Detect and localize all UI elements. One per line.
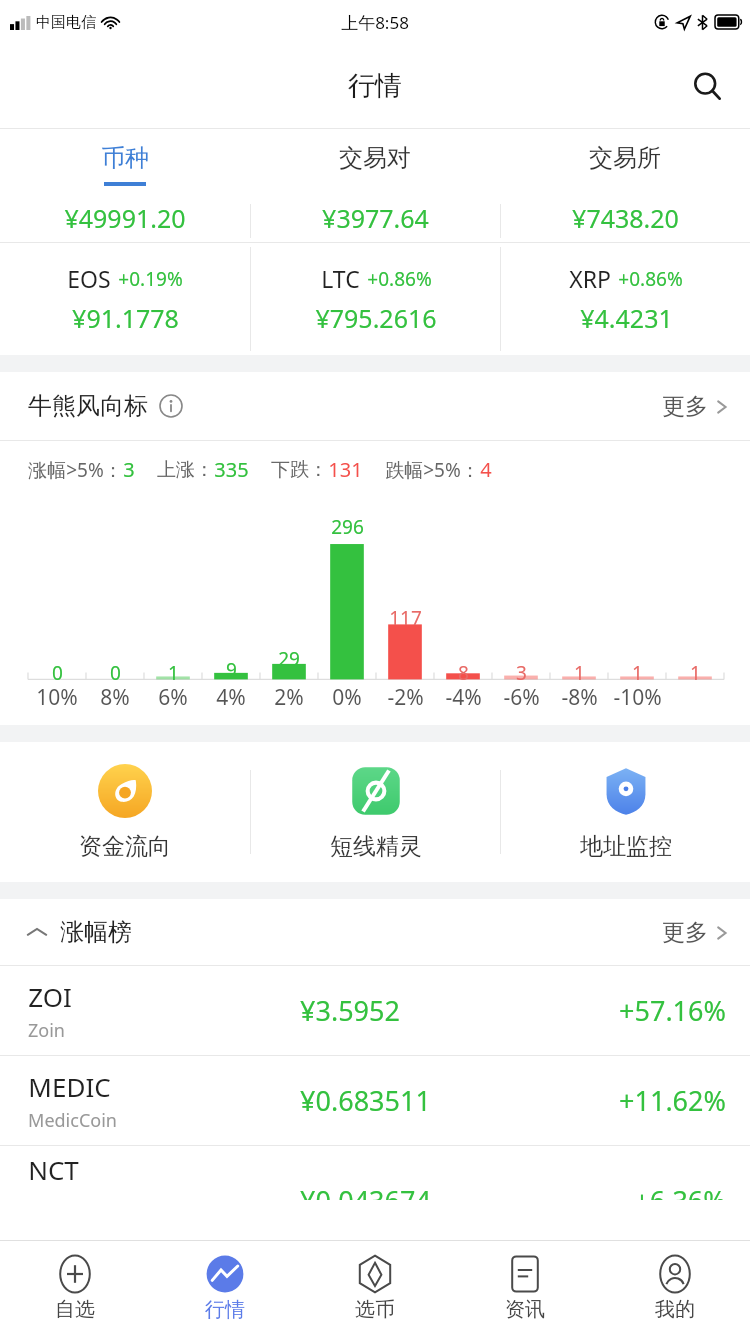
staticText: ¥49991.20 xyxy=(64,201,186,235)
staticText: 更多 xyxy=(662,392,708,421)
button[interactable]: 说明 xyxy=(158,393,184,419)
button[interactable]: 选币 xyxy=(300,1241,450,1334)
staticText: 335 xyxy=(214,456,249,483)
button[interactable]: 币种 xyxy=(0,129,250,200)
staticText: 短线精灵 xyxy=(330,832,422,861)
staticText: 4% xyxy=(216,683,246,712)
staticText: 自选 xyxy=(55,1297,95,1322)
staticText: ¥7438.20 xyxy=(572,201,679,235)
staticText: 上午8:58 xyxy=(341,11,409,34)
button[interactable]: 资金流向 xyxy=(0,742,250,882)
staticText: 4 xyxy=(480,456,492,483)
staticText: 9 xyxy=(226,657,237,683)
staticText: ¥795.2616 xyxy=(315,301,437,335)
staticText: MedicCoin xyxy=(28,1108,117,1133)
staticText: Zoin xyxy=(28,1018,65,1043)
staticText: 交易对 xyxy=(339,143,411,173)
button[interactable]: EOS xyxy=(0,243,250,355)
staticText: 上涨： xyxy=(157,458,214,482)
staticText: 3 xyxy=(123,456,135,483)
staticText: +11.62% xyxy=(619,1082,726,1119)
staticText: 0 xyxy=(52,660,63,686)
button[interactable]: MEDIC xyxy=(0,1056,750,1145)
staticText: 资讯 xyxy=(505,1297,545,1322)
button[interactable]: 涨幅榜 xyxy=(26,917,132,947)
button[interactable]: 行情 xyxy=(150,1241,300,1334)
staticText: 0 xyxy=(110,660,121,686)
staticText: ¥3977.64 xyxy=(322,201,429,235)
staticText: 117 xyxy=(389,605,422,631)
staticText: 行情 xyxy=(348,69,402,103)
button[interactable]: 更多 xyxy=(662,918,728,947)
staticText: -8% xyxy=(561,683,598,712)
staticText: 中国电信 xyxy=(36,13,96,32)
staticText: 涨幅>5%： xyxy=(28,457,123,483)
staticText: EOS xyxy=(67,263,111,294)
staticText: ¥4.4231 xyxy=(580,301,673,335)
staticText: 1 xyxy=(690,660,701,686)
staticText: 选币 xyxy=(355,1297,395,1322)
staticText: ZOI xyxy=(28,979,72,1014)
staticText: +0.86% xyxy=(367,266,432,292)
staticText: NCT xyxy=(28,1152,79,1187)
staticText: 资金流向 xyxy=(79,832,171,861)
staticText: 29 xyxy=(278,646,300,672)
button[interactable]: ZOI xyxy=(0,966,750,1055)
button[interactable]: 自选 xyxy=(0,1241,150,1334)
staticText: 下跌： xyxy=(271,458,328,482)
staticText: -6% xyxy=(503,683,540,712)
button[interactable]: 短线精灵 xyxy=(251,742,500,882)
staticText: MEDIC xyxy=(28,1069,111,1104)
button[interactable]: 更多 xyxy=(662,392,728,421)
button[interactable]: 搜索 xyxy=(684,63,730,109)
staticText: 1 xyxy=(168,660,179,686)
staticText: 296 xyxy=(331,514,364,540)
staticText: ¥0.683511 xyxy=(300,1082,431,1119)
staticText: 1 xyxy=(574,660,585,686)
button[interactable]: XRP xyxy=(501,243,750,355)
button[interactable]: 地址监控 xyxy=(501,742,750,882)
button[interactable]: 交易对 xyxy=(250,129,500,200)
staticText: +6.36% xyxy=(634,1182,726,1200)
staticText: 跌幅>5%： xyxy=(385,457,480,483)
button[interactable]: ¥7438.20 xyxy=(501,200,750,242)
staticText: 地址监控 xyxy=(580,832,672,861)
staticText: 交易所 xyxy=(589,143,661,173)
staticText: 2% xyxy=(274,683,304,712)
staticText: 10% xyxy=(36,683,78,712)
staticText: 涨幅榜 xyxy=(60,917,132,947)
button[interactable]: ¥49991.20 xyxy=(0,200,250,242)
staticText: 牛熊风向标 xyxy=(28,391,148,421)
staticText: -4% xyxy=(445,683,482,712)
button[interactable]: 资讯 xyxy=(450,1241,600,1334)
staticText: 我的 xyxy=(655,1297,695,1322)
staticText: +0.19% xyxy=(118,266,183,292)
staticText: 币种 xyxy=(101,143,149,173)
button[interactable]: LTC xyxy=(251,243,500,355)
staticText: +0.86% xyxy=(618,266,683,292)
staticText: ¥0.043674 xyxy=(300,1182,431,1200)
button[interactable]: ¥3977.64 xyxy=(251,200,500,242)
button[interactable]: NCT xyxy=(0,1146,750,1200)
button[interactable]: 交易所 xyxy=(500,129,750,200)
staticText: 行情 xyxy=(205,1297,245,1322)
staticText: 更多 xyxy=(662,918,708,947)
staticText: +57.16% xyxy=(619,992,726,1029)
staticText: -10% xyxy=(613,683,662,712)
staticText: ¥3.5952 xyxy=(300,992,400,1029)
staticText: 6% xyxy=(158,683,188,712)
staticText: 3 xyxy=(516,660,527,686)
staticText: ¥91.1778 xyxy=(72,301,179,335)
staticText: -2% xyxy=(387,683,424,712)
staticText: LTC xyxy=(321,263,360,294)
staticText: 8 xyxy=(458,660,469,686)
staticText: XRP xyxy=(569,263,611,294)
staticText: 131 xyxy=(328,456,363,483)
staticText: 1 xyxy=(632,660,643,686)
staticText: 0% xyxy=(332,683,362,712)
staticText: 8% xyxy=(100,683,130,712)
button[interactable]: 我的 xyxy=(600,1241,750,1334)
